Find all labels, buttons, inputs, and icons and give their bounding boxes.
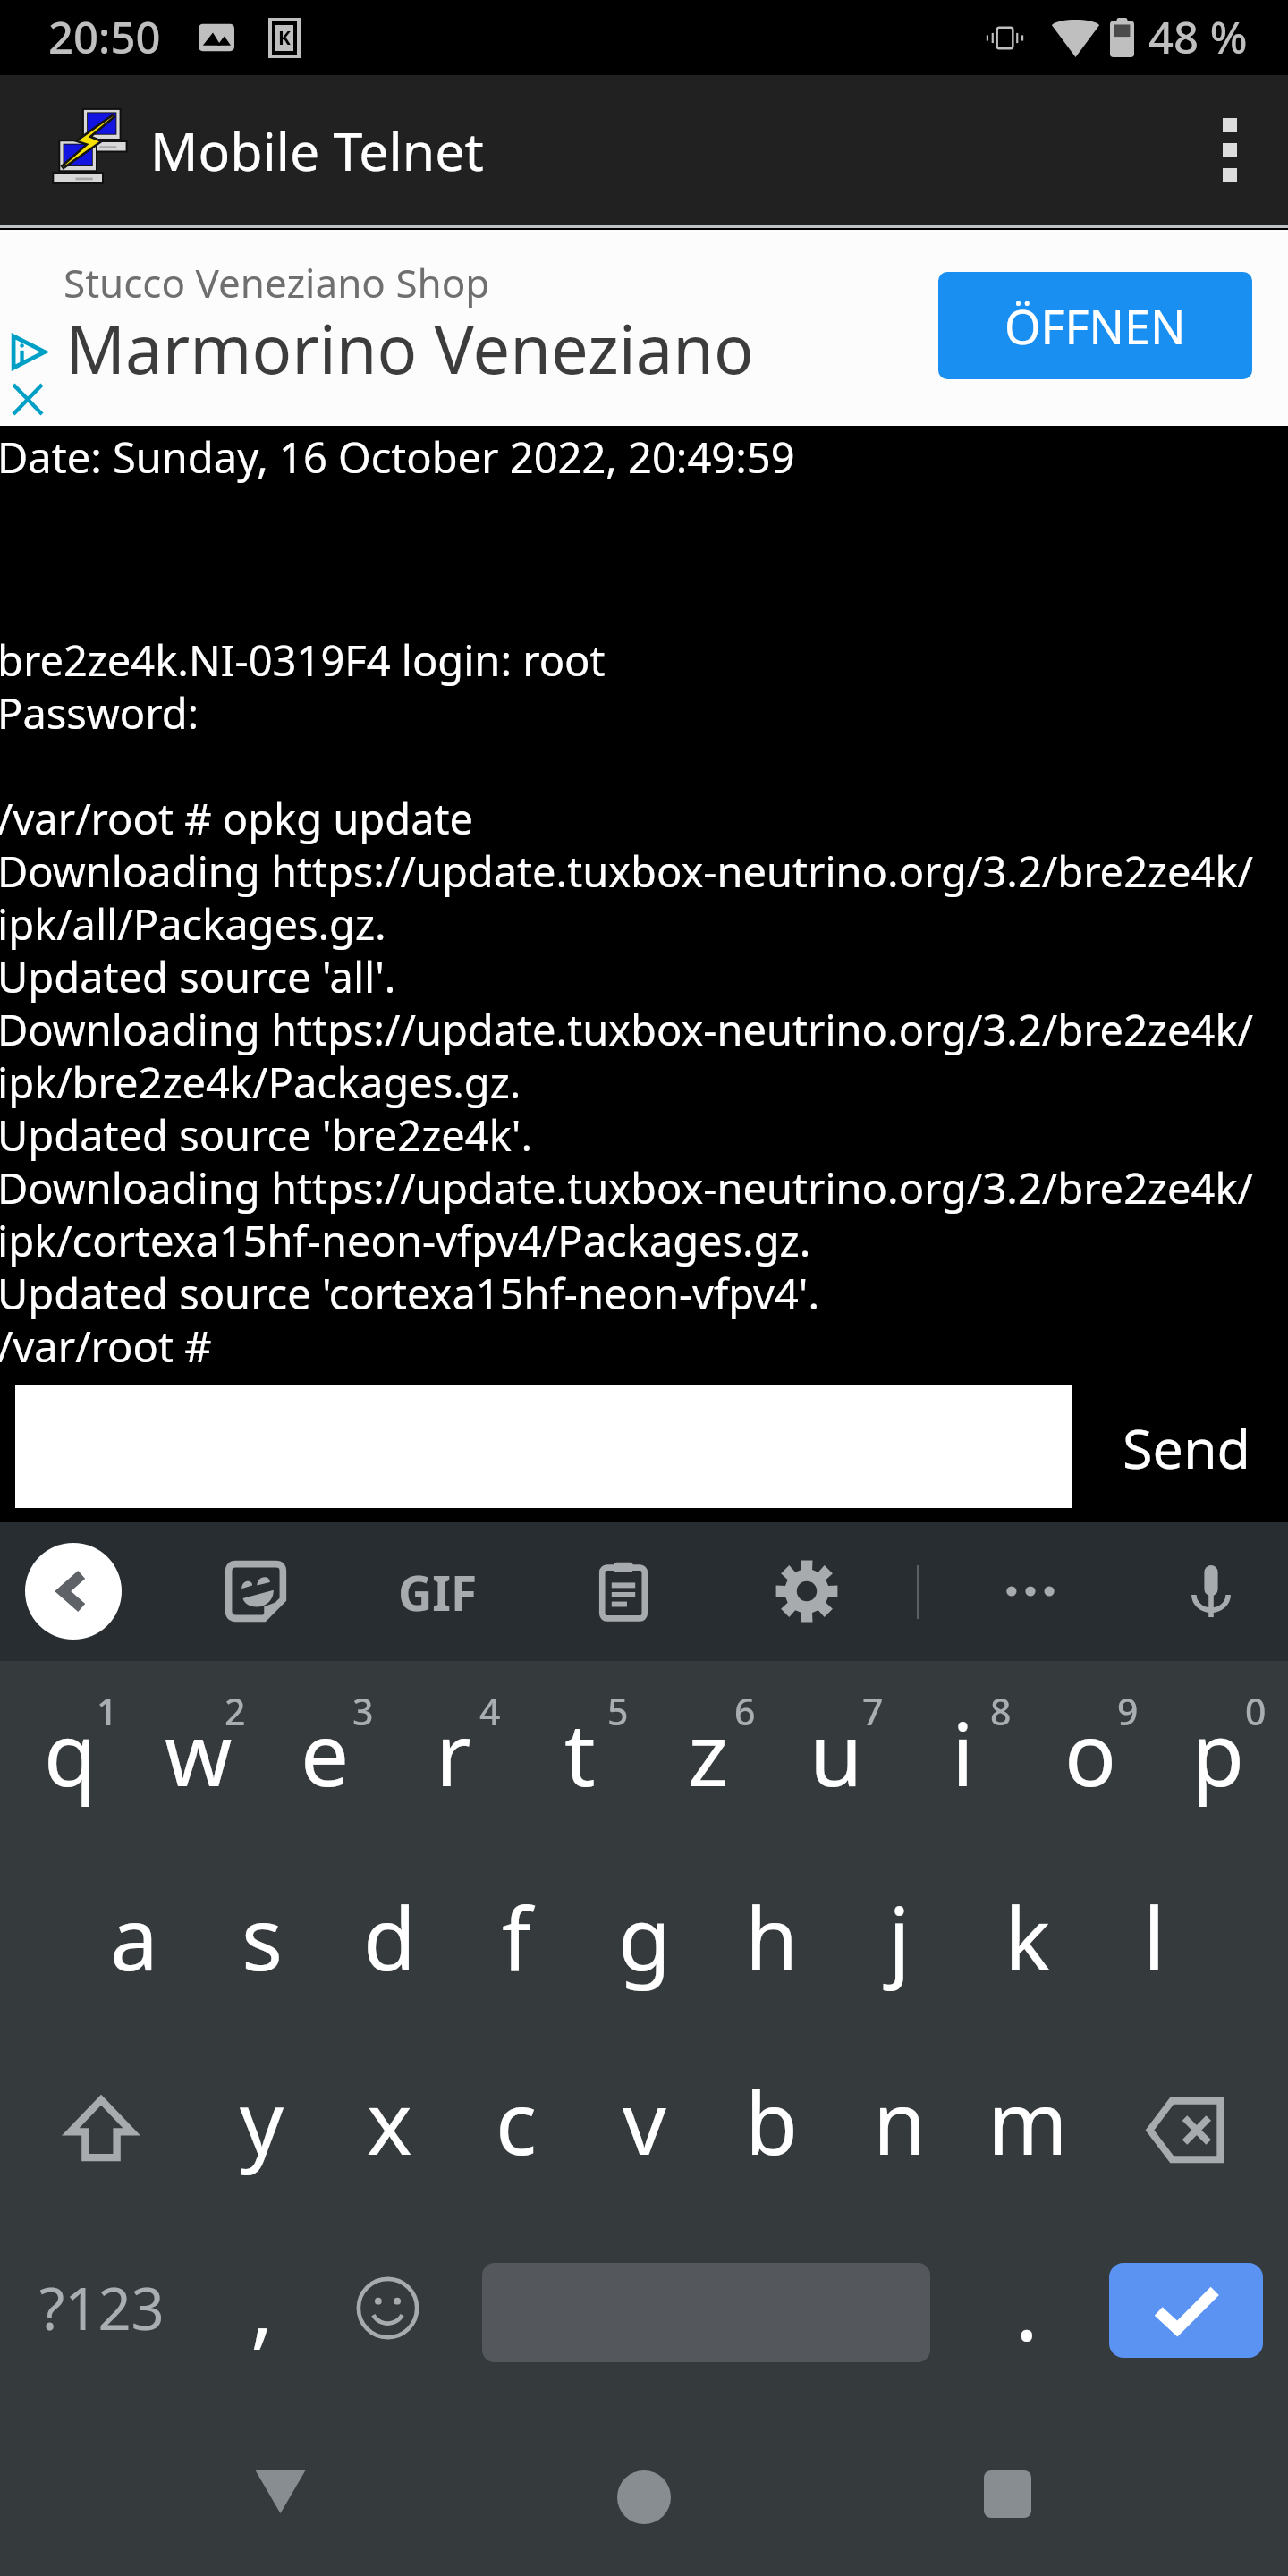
button[interactable]: b — [708, 2064, 835, 2245]
staticText: g — [618, 1878, 672, 1996]
button[interactable]: o — [1027, 1696, 1155, 1877]
button[interactable]: ÖFFNEN — [938, 272, 1252, 379]
staticText: b — [745, 2063, 799, 2180]
button[interactable]: Home — [580, 2441, 708, 2554]
staticText: a — [110, 1878, 158, 1996]
button[interactable]: Clipboard — [559, 1532, 688, 1650]
button[interactable]: e — [261, 1696, 389, 1877]
button[interactable]: Shift — [65, 2094, 137, 2163]
staticText: ?123 — [39, 2268, 165, 2348]
staticText: 0 — [1245, 1686, 1267, 1731]
button[interactable]: Back — [216, 2435, 344, 2547]
staticText: x — [367, 2063, 412, 2180]
button[interactable]: r — [389, 1696, 517, 1877]
button[interactable]: l — [1090, 1880, 1218, 2061]
staticText: , — [250, 2246, 274, 2363]
staticText: r — [436, 1694, 471, 1811]
staticText: 3 — [352, 1686, 374, 1731]
button[interactable]: m — [963, 2064, 1091, 2245]
staticText: Date: Sunday, 16 October 2022, 20:49:59 — [0, 428, 795, 486]
staticText: 1 — [97, 1686, 118, 1731]
button[interactable]: h — [708, 1880, 835, 2061]
button[interactable] — [15, 1385, 1072, 1508]
button[interactable]: GIF — [373, 1532, 502, 1650]
staticText: 9 — [1117, 1686, 1139, 1731]
staticText: k — [1004, 1878, 1051, 1996]
button[interactable]: u — [772, 1696, 900, 1877]
button[interactable]: Backspace — [1145, 2097, 1224, 2164]
staticText: z — [688, 1694, 729, 1811]
staticText: GIF — [398, 1560, 478, 1623]
staticText: h — [745, 1878, 799, 1996]
staticText: 20:50 — [48, 7, 161, 67]
button[interactable]: g — [580, 1880, 708, 2061]
button[interactable]: Emoji — [324, 2217, 452, 2398]
staticText: y — [240, 2063, 284, 2180]
button[interactable]: z — [644, 1696, 772, 1877]
button[interactable]: t — [516, 1696, 644, 1877]
button[interactable]: j — [835, 1880, 963, 2061]
button[interactable]: y — [198, 2064, 326, 2245]
button[interactable]: x — [326, 2064, 453, 2245]
staticText: 5 — [607, 1686, 629, 1731]
staticText: s — [241, 1878, 283, 1996]
staticText: Stucco Veneziano Shop — [64, 256, 490, 309]
button[interactable]: s — [198, 1880, 326, 2061]
staticText: . — [1015, 2249, 1038, 2366]
button[interactable]: Stickers — [191, 1532, 320, 1650]
button[interactable]: v — [580, 2064, 708, 2245]
button[interactable]: Settings — [742, 1532, 871, 1650]
staticText: 4 — [479, 1686, 501, 1731]
staticText: Send — [1123, 1411, 1251, 1485]
button[interactable]: ?123 — [6, 2245, 198, 2426]
button[interactable]: Recent apps — [943, 2437, 1072, 2550]
staticText: l — [1143, 1878, 1165, 1996]
button[interactable]: Enter — [1109, 2263, 1263, 2358]
button[interactable]: i — [899, 1696, 1027, 1877]
button[interactable]: More options — [1172, 75, 1288, 225]
staticText: ÖFFNEN — [1004, 294, 1186, 358]
staticText: f — [502, 1878, 532, 1996]
staticText: q — [44, 1694, 97, 1811]
button[interactable]: a — [70, 1880, 198, 2061]
staticText: i — [952, 1694, 974, 1811]
staticText: e — [301, 1694, 350, 1811]
staticText: Marmorino Veneziano — [65, 303, 754, 394]
button[interactable]: More options — [966, 1532, 1095, 1650]
staticText: 7 — [862, 1686, 884, 1731]
button[interactable]: p — [1154, 1696, 1282, 1877]
staticText: m — [987, 2063, 1068, 2180]
button[interactable]: w — [134, 1696, 262, 1877]
button[interactable]: . — [962, 2245, 1089, 2426]
button[interactable]: Voice input — [1147, 1532, 1275, 1650]
staticText: t — [564, 1694, 596, 1811]
button[interactable]: n — [835, 2064, 963, 2245]
button[interactable]: q — [6, 1696, 134, 1877]
staticText: p — [1191, 1694, 1245, 1811]
staticText: 8 — [990, 1686, 1012, 1731]
staticText: d — [363, 1878, 417, 1996]
button[interactable]: Stucco Veneziano Shop — [0, 230, 1288, 426]
staticText: w — [165, 1694, 233, 1811]
staticText: u — [809, 1694, 863, 1811]
staticText: K — [278, 25, 291, 51]
button[interactable]: Send — [1085, 1374, 1288, 1521]
staticText: 2 — [225, 1686, 246, 1731]
staticText: n — [873, 2063, 927, 2180]
staticText: bre2ze4k.NI-0319F4 login: root Password:… — [0, 631, 1285, 1375]
staticText: j — [888, 1878, 911, 1996]
button[interactable]: , — [198, 2245, 326, 2426]
staticText: 48 % — [1148, 7, 1248, 67]
button[interactable]: k — [963, 1880, 1091, 2061]
staticText: v — [623, 2063, 666, 2180]
staticText: c — [496, 2063, 538, 2180]
button[interactable]: c — [453, 2064, 580, 2245]
button[interactable]: f — [453, 1880, 580, 2061]
staticText: o — [1064, 1694, 1117, 1811]
button[interactable]: d — [326, 1880, 453, 2061]
staticText: Mobile Telnet — [150, 114, 484, 186]
staticText: 6 — [734, 1686, 756, 1731]
button[interactable]: Back — [25, 1543, 122, 1640]
